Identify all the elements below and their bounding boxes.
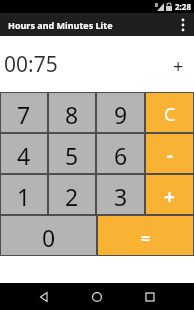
button[interactable]: 6 bbox=[96, 133, 145, 174]
staticText: 2 bbox=[65, 181, 79, 212]
button[interactable]: 5 bbox=[48, 133, 96, 174]
button[interactable]: 9 bbox=[96, 92, 145, 133]
staticText: - bbox=[167, 143, 173, 168]
staticText: C bbox=[164, 102, 176, 127]
button[interactable]: 0 bbox=[0, 215, 97, 256]
staticText: 0 bbox=[42, 222, 56, 253]
button[interactable] bbox=[144, 291, 156, 303]
button[interactable]: 3 bbox=[96, 174, 145, 215]
button[interactable] bbox=[38, 291, 50, 303]
button[interactable]: = bbox=[97, 215, 194, 256]
button[interactable]: - bbox=[145, 133, 194, 174]
staticText: 9 bbox=[114, 99, 128, 130]
button[interactable]: 1 bbox=[0, 174, 48, 215]
button[interactable]: 8 bbox=[48, 92, 96, 133]
staticText: + bbox=[164, 184, 175, 210]
button[interactable]: 7 bbox=[0, 92, 48, 133]
button[interactable] bbox=[91, 291, 103, 303]
button[interactable]: + bbox=[145, 174, 194, 215]
button[interactable]: C bbox=[145, 92, 194, 133]
staticText: 7 bbox=[17, 99, 31, 130]
staticText: 3 bbox=[114, 181, 128, 212]
button[interactable]: Hours and Minutes Lite bbox=[0, 13, 194, 36]
staticText: = bbox=[141, 227, 151, 249]
staticText: + bbox=[173, 54, 184, 79]
staticText: 2:28 bbox=[175, 1, 191, 12]
staticText: 8 bbox=[65, 99, 79, 130]
staticText: 5 bbox=[65, 140, 79, 171]
staticText: 6 bbox=[114, 140, 128, 171]
button[interactable]: 4 bbox=[0, 133, 48, 174]
staticText: Hours and Minutes Lite bbox=[8, 19, 113, 31]
button[interactable] bbox=[179, 18, 187, 32]
staticText: 1 bbox=[17, 181, 31, 212]
staticText: 00:75 bbox=[4, 50, 58, 79]
staticText: 4 bbox=[17, 140, 31, 171]
button[interactable]: 2 bbox=[48, 174, 96, 215]
